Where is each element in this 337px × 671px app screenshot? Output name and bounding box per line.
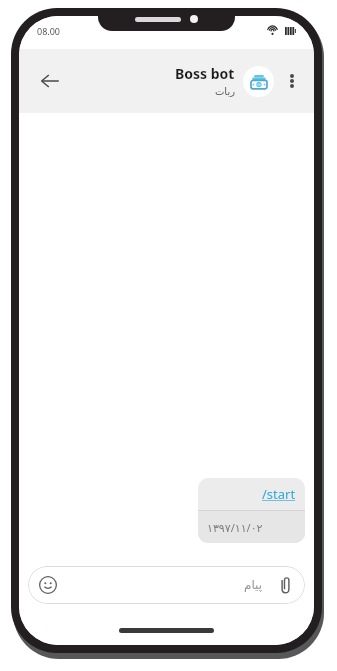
button[interactable]: More options xyxy=(276,65,308,97)
button[interactable]: Attach file xyxy=(272,572,298,598)
staticText: Boss bot xyxy=(175,64,235,83)
staticText: ۱۳۹۷/۱۱/۰۲ xyxy=(207,520,263,535)
staticText: 08.00 xyxy=(37,25,61,37)
button[interactable]: Back xyxy=(30,61,70,101)
button[interactable]: Bot avatar xyxy=(243,66,274,97)
button[interactable]: Boss bot xyxy=(175,64,235,98)
button[interactable]: /start xyxy=(198,478,305,543)
staticText: /start xyxy=(262,485,296,503)
button[interactable]: Emoji xyxy=(28,566,305,604)
button[interactable]: Emoji xyxy=(35,572,61,598)
staticText: پیام xyxy=(244,578,263,592)
staticText: ربات xyxy=(214,86,235,98)
